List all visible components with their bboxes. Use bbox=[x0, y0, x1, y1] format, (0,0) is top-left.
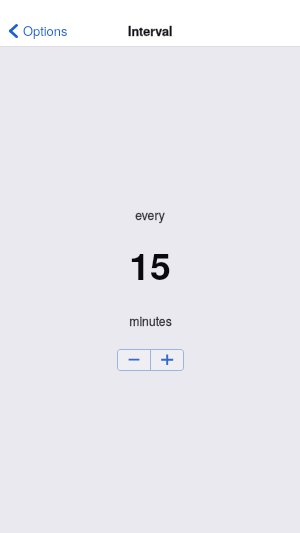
button[interactable]: Options bbox=[4, 14, 72, 42]
staticText: minutes bbox=[129, 312, 172, 329]
staticText: Interval bbox=[128, 22, 173, 40]
staticText: every bbox=[135, 206, 165, 223]
staticText: 15 bbox=[129, 238, 171, 292]
staticText: every bbox=[135, 206, 165, 223]
staticText: Interval bbox=[128, 22, 173, 40]
button[interactable]: Increase interval bbox=[151, 349, 184, 371]
button[interactable]: Decrease interval bbox=[117, 349, 150, 371]
staticText: minutes bbox=[129, 312, 172, 329]
staticText: Options bbox=[23, 21, 68, 39]
